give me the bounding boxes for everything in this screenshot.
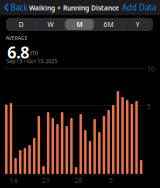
- staticText: 28: [74, 176, 82, 185]
- staticText: 10: [147, 64, 155, 73]
- staticText: 6M: [104, 20, 114, 29]
- staticText: Sep 13 – Oct 13, 2025: [6, 58, 57, 65]
- staticText: M: [76, 20, 82, 29]
- staticText: W: [47, 20, 53, 29]
- button[interactable]: D: [7, 19, 35, 30]
- staticText: mi: [30, 48, 38, 57]
- staticText: Back: [10, 2, 27, 13]
- staticText: Walking + Running Distance: [29, 3, 119, 12]
- button[interactable]: Y: [123, 19, 152, 30]
- staticText: Y: [136, 20, 140, 29]
- staticText: 14: [9, 176, 17, 185]
- button[interactable]: Add Data: [120, 1, 158, 14]
- staticText: 6.8: [7, 42, 29, 63]
- button[interactable]: W: [36, 19, 65, 30]
- staticText: 5: [147, 102, 151, 111]
- staticText: 21: [42, 176, 50, 185]
- staticText: D: [19, 20, 24, 29]
- button[interactable]: 6M: [94, 19, 123, 30]
- button[interactable]: Back: [2, 1, 29, 14]
- staticText: AVERAGE: [6, 34, 28, 42]
- staticText: 5: [109, 176, 113, 185]
- staticText: Add Data: [122, 2, 156, 13]
- button[interactable]: M: [65, 19, 94, 30]
